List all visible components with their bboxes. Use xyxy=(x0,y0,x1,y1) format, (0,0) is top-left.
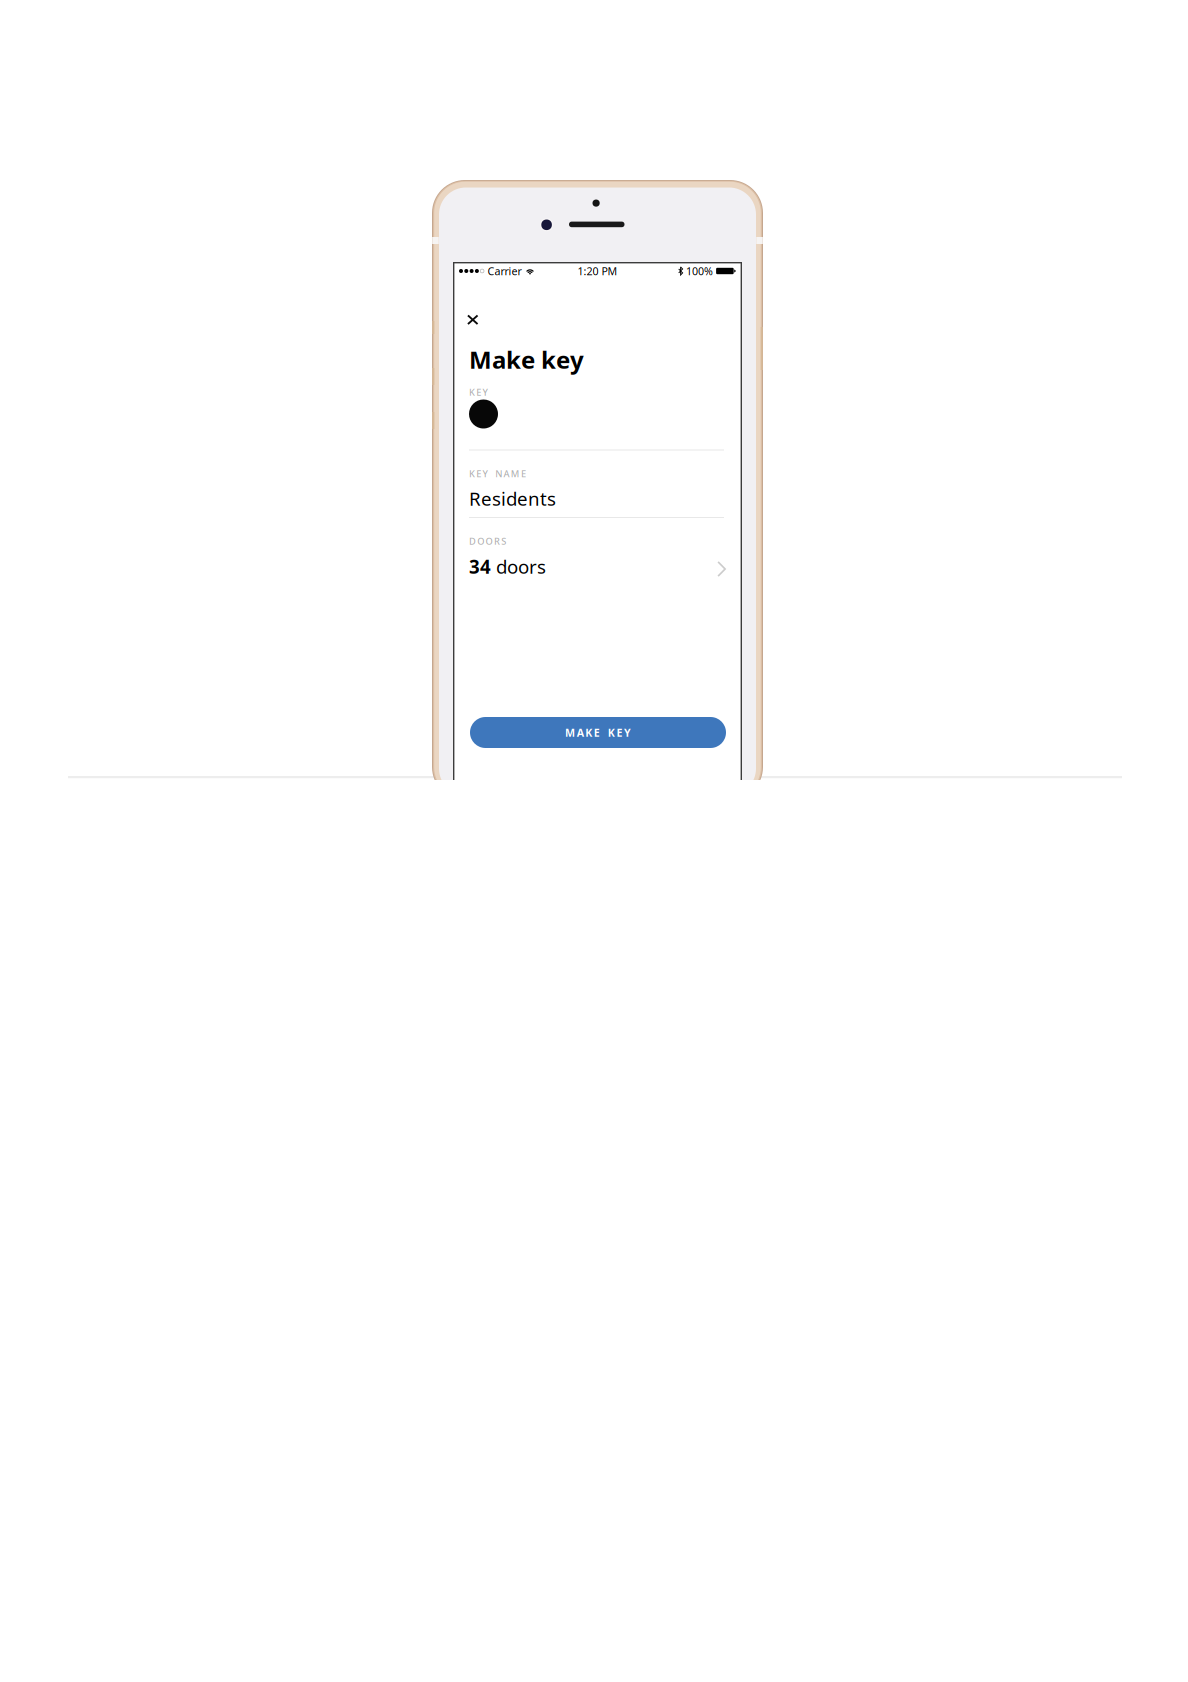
staticText: K xyxy=(469,467,475,480)
staticText: A xyxy=(503,467,509,480)
staticText: Residents xyxy=(469,486,556,511)
staticText: E xyxy=(476,386,481,398)
staticText: R xyxy=(494,535,500,547)
staticText: Y xyxy=(483,467,488,480)
staticText: E xyxy=(476,467,481,480)
staticText: doors xyxy=(491,554,546,579)
staticText: M xyxy=(511,467,520,480)
staticText: 100% xyxy=(686,264,713,278)
staticText: S xyxy=(501,535,506,547)
staticText: 1:20 PM xyxy=(577,264,617,278)
staticText: O xyxy=(486,535,493,547)
staticText: M xyxy=(565,725,575,740)
button[interactable]: Close xyxy=(453,304,490,335)
staticText: Make key xyxy=(469,343,584,375)
staticText: K xyxy=(608,725,615,740)
button[interactable]: 34 xyxy=(453,554,742,582)
staticText: Y xyxy=(483,386,488,398)
staticText: E xyxy=(594,725,600,740)
staticText: N xyxy=(495,467,502,480)
staticText: Carrier xyxy=(487,264,521,278)
staticText: D xyxy=(469,535,476,547)
staticText: E xyxy=(521,467,526,480)
staticText: O xyxy=(477,535,484,547)
staticText: Y xyxy=(624,725,631,740)
button[interactable]: M xyxy=(470,717,726,748)
staticText: K xyxy=(585,725,592,740)
staticText: E xyxy=(616,725,622,740)
staticText: 34 xyxy=(469,554,491,579)
staticText: K xyxy=(469,386,475,398)
staticText: A xyxy=(577,725,584,740)
